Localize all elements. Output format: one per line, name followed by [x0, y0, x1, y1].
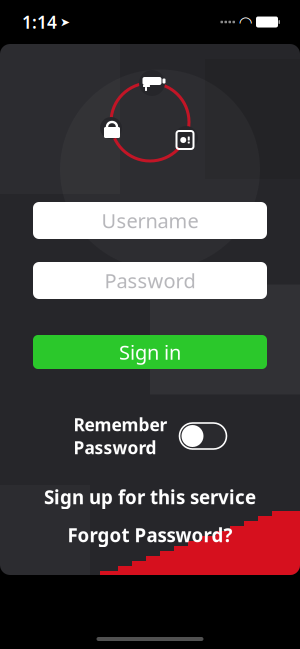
staticText: Username [101, 207, 198, 234]
staticText: Remember Password [73, 413, 167, 459]
button[interactable]: Remember Password [179, 423, 226, 449]
staticText: Forgot Password? [67, 523, 232, 547]
button[interactable]: Sign in [33, 335, 267, 369]
staticText: Sign in [119, 339, 181, 365]
staticText: ➤ [60, 15, 70, 29]
staticText: Sign up for this service [44, 485, 256, 509]
button[interactable]: Username [33, 202, 267, 239]
staticText: 1:14 [22, 10, 57, 33]
button[interactable]: Sign up for this service [33, 485, 267, 509]
staticText: ◠ [239, 13, 251, 31]
staticText: Password [104, 267, 195, 294]
button[interactable]: Forgot Password? [33, 523, 267, 547]
button[interactable]: Password [33, 262, 267, 299]
